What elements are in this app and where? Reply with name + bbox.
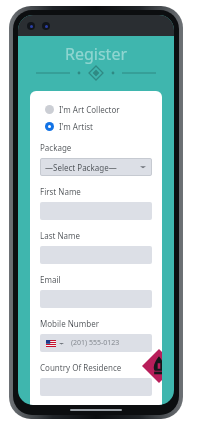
staticText: (201) 555-0123 bbox=[71, 338, 120, 348]
staticText: I'm Artist bbox=[59, 121, 93, 132]
staticText: —Select Package— bbox=[45, 162, 117, 173]
staticText: First Name bbox=[40, 186, 81, 197]
staticText: Email bbox=[40, 274, 61, 285]
button[interactable]: —Select Package— bbox=[40, 158, 152, 176]
staticText: Package bbox=[40, 142, 72, 153]
staticText: Last Name bbox=[40, 230, 81, 241]
staticText: Mobile Number bbox=[40, 318, 99, 329]
button[interactable]: I'm Art Collector bbox=[40, 103, 152, 116]
button[interactable]: Artist badge bbox=[142, 349, 162, 383]
button[interactable]: I'm Artist bbox=[40, 120, 152, 133]
staticText: I'm Art Collector bbox=[59, 104, 120, 115]
button[interactable]: (201) 555-0123 bbox=[40, 334, 152, 352]
staticText: Register bbox=[65, 43, 128, 65]
staticText: Country Of Residence bbox=[40, 362, 122, 373]
